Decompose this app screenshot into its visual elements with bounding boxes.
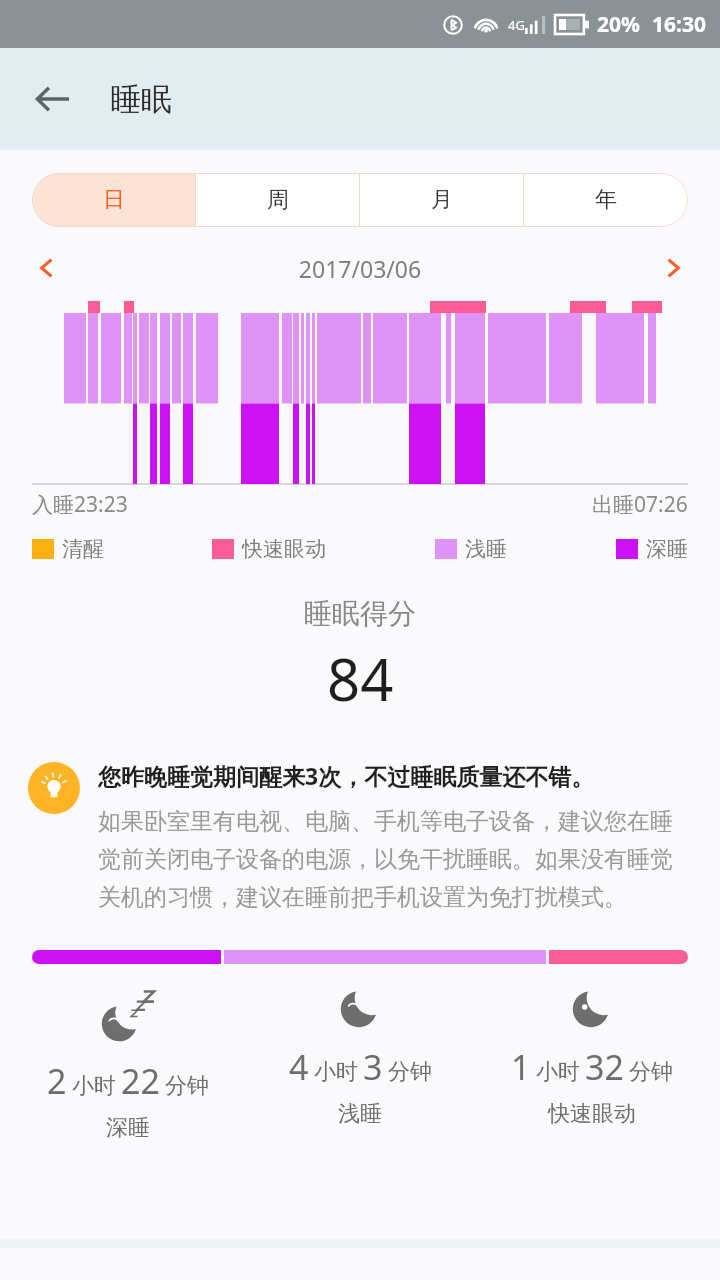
button[interactable]: 年 — [524, 173, 688, 227]
staticText: 周 — [267, 186, 289, 214]
staticText: 22 — [121, 1058, 160, 1104]
staticText: 1 — [511, 1044, 531, 1090]
staticText: 3 — [363, 1044, 383, 1090]
staticText: 小时 — [72, 1072, 116, 1100]
staticText: 入睡23:23 — [32, 490, 128, 519]
staticText: 深睡 — [106, 1114, 150, 1142]
staticText: 分钟 — [629, 1058, 673, 1086]
staticText: 出睡07:26 — [592, 490, 688, 519]
staticText: 睡眠得分 — [304, 596, 416, 631]
staticText: 浅睡 — [338, 1100, 382, 1128]
staticText: 日 — [103, 186, 125, 214]
staticText: 快速眼动 — [548, 1100, 636, 1128]
button[interactable]: Next day — [650, 245, 696, 291]
button[interactable]: 2 — [12, 990, 244, 1142]
staticText: 32 — [585, 1044, 624, 1090]
staticText: 分钟 — [388, 1058, 432, 1086]
staticText: 睡眠 — [110, 80, 172, 119]
button[interactable]: 4 — [244, 990, 476, 1128]
staticText: 分钟 — [165, 1072, 209, 1100]
staticText: 84 — [327, 639, 394, 718]
button[interactable]: Back — [22, 68, 84, 130]
staticText: 2017/03/06 — [70, 253, 650, 284]
staticText: 2 — [47, 1058, 67, 1104]
button[interactable]: 日 — [32, 173, 196, 227]
button[interactable]: 月 — [360, 173, 524, 227]
staticText: 月 — [431, 186, 453, 214]
staticText: 20% — [597, 10, 640, 39]
staticText: 快速眼动 — [242, 536, 326, 562]
staticText: 浅睡 — [465, 536, 507, 562]
staticText: 年 — [595, 186, 617, 214]
button[interactable]: 周 — [196, 173, 360, 227]
staticText: 您昨晚睡觉期间醒来3次，不过睡眠质量还不错。 — [98, 760, 595, 791]
staticText: 4 — [289, 1044, 309, 1090]
staticText: 清醒 — [62, 536, 104, 562]
staticText: 小时 — [536, 1058, 580, 1086]
staticText: 小时 — [314, 1058, 358, 1086]
staticText: 如果卧室里有电视、电脑、手机等电子设备，建议您在睡觉前关闭电子设备的电源，以免干… — [98, 807, 692, 912]
button[interactable]: Previous day — [24, 245, 70, 291]
staticText: 4G — [508, 16, 525, 34]
staticText: 16:30 — [652, 10, 706, 39]
staticText: 深睡 — [646, 536, 688, 562]
button[interactable]: 1 — [476, 990, 708, 1128]
